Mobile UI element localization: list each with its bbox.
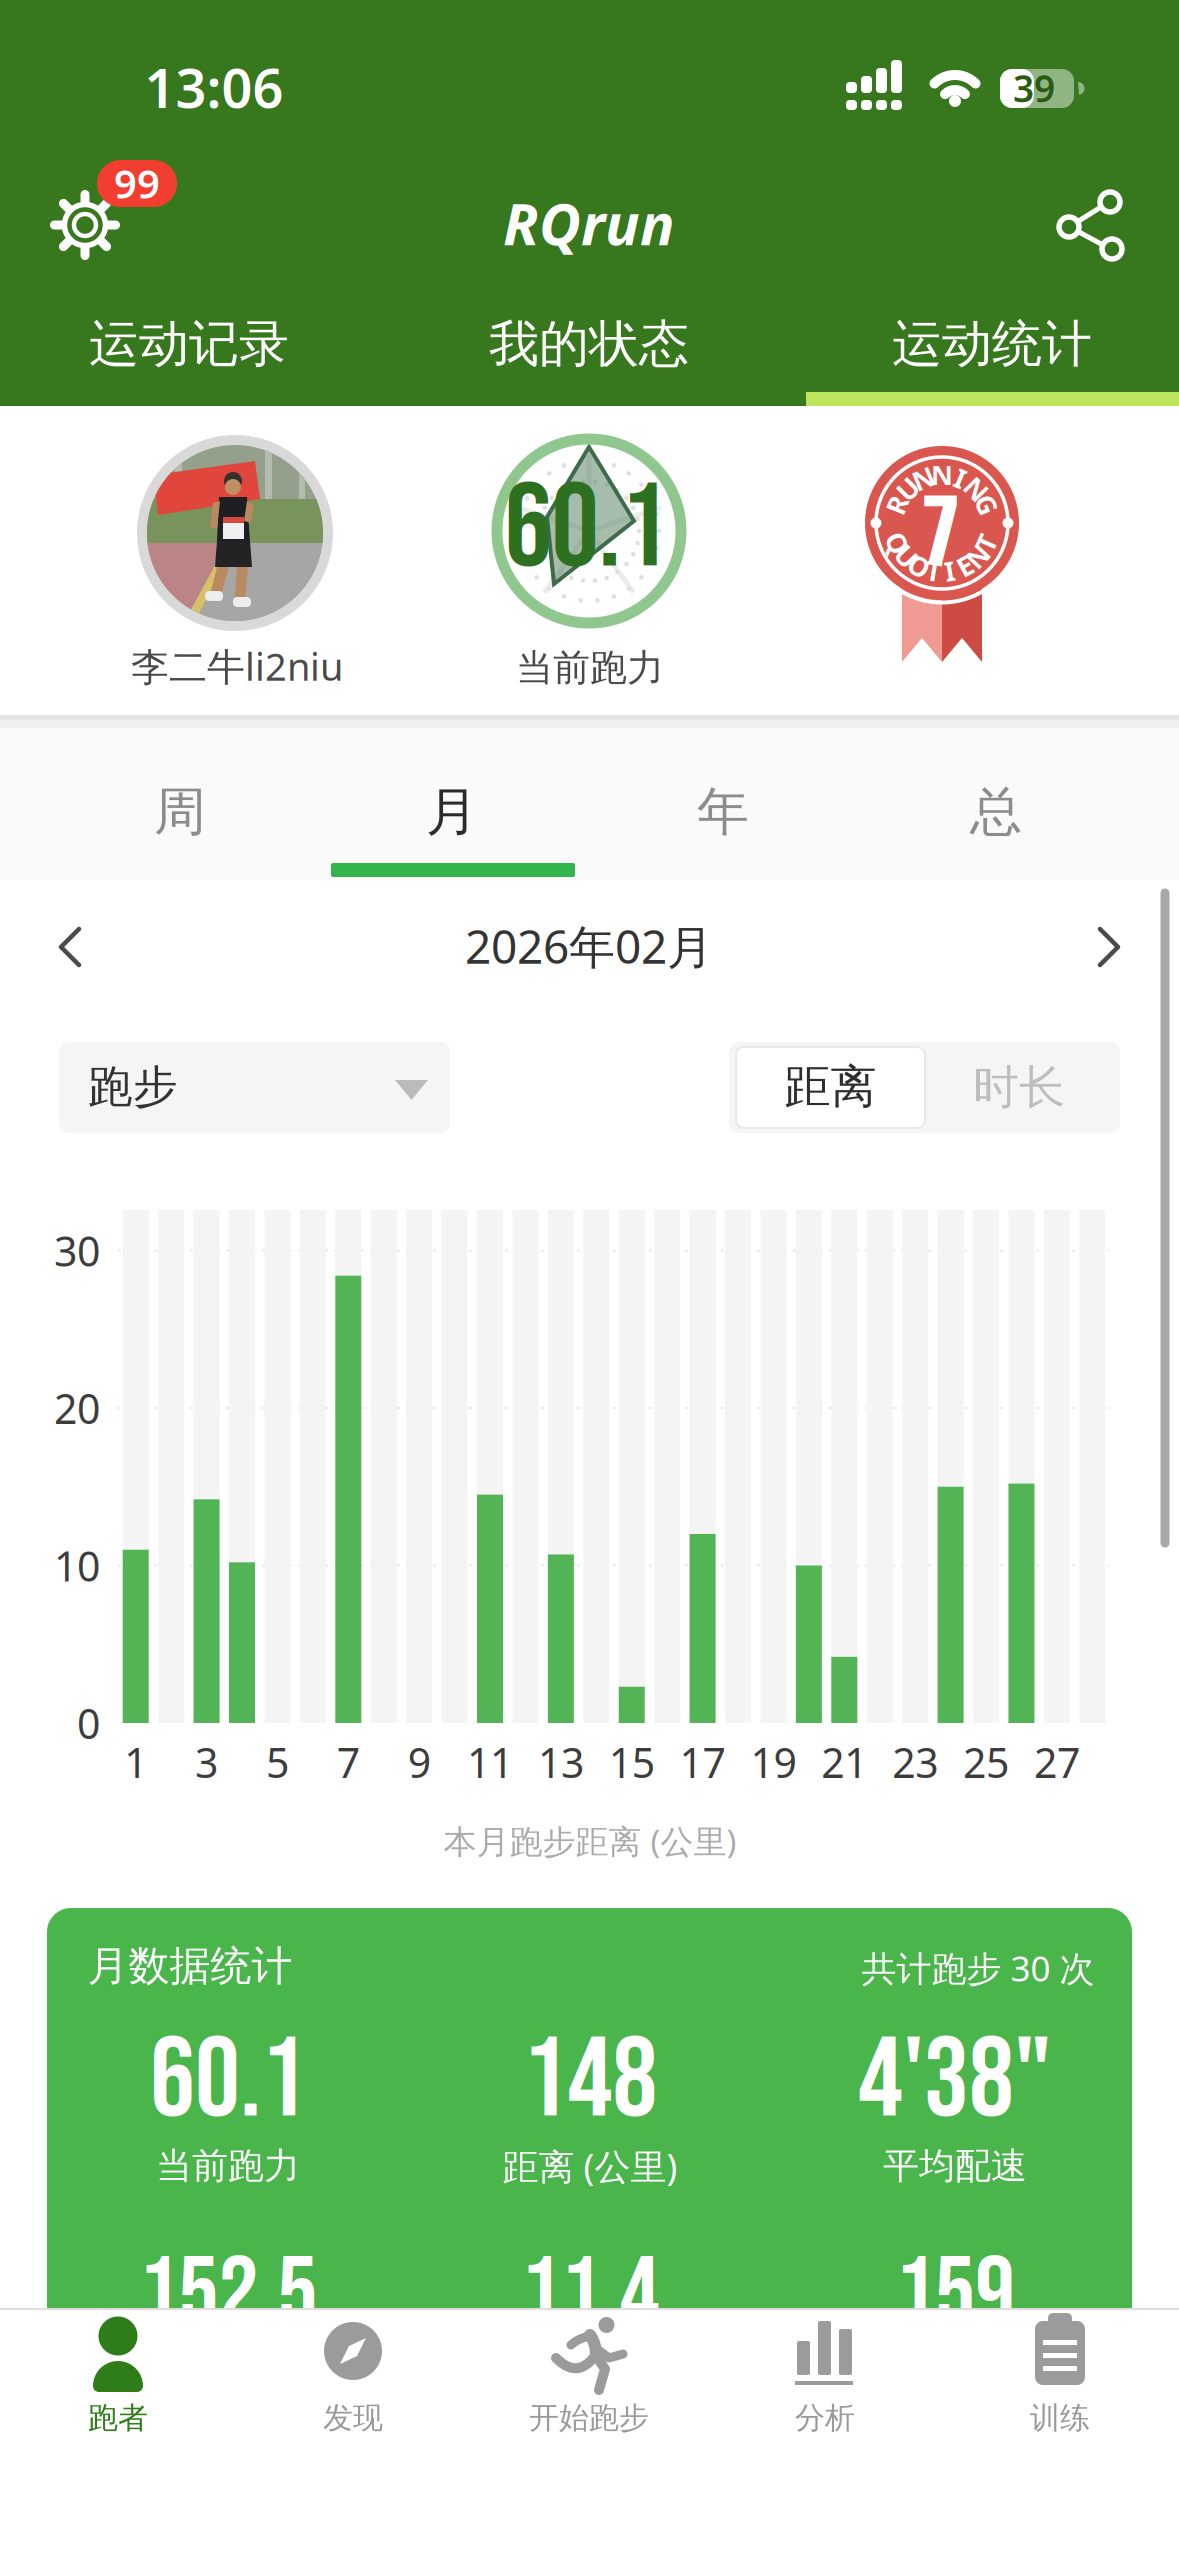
button[interactable]: 开始跑步 <box>489 2307 689 2457</box>
staticText: 开始跑步 <box>529 2399 649 2437</box>
staticText: 2026年02月 <box>465 915 713 977</box>
staticText: U <box>896 538 916 574</box>
staticText: I <box>944 552 955 589</box>
staticText: 19 <box>750 1734 796 1790</box>
staticText: E <box>957 547 972 584</box>
button[interactable]: 周 <box>60 762 300 862</box>
staticText: Q <box>887 524 908 561</box>
staticText: 运动记录 <box>89 312 289 375</box>
button[interactable]: Share <box>1050 181 1140 271</box>
staticText: 20 <box>54 1380 100 1436</box>
button[interactable]: 时长 <box>929 1047 1109 1128</box>
button[interactable]: 运动记录 <box>24 299 354 389</box>
staticText: 7 <box>922 463 959 589</box>
staticText: 17 <box>680 1734 726 1790</box>
staticText: 25 <box>963 1734 1009 1790</box>
button[interactable]: 跑步 <box>59 1042 450 1133</box>
button[interactable]: 距离 <box>736 1047 925 1128</box>
staticText: U <box>897 470 917 507</box>
button[interactable]: 发现 <box>253 2307 453 2457</box>
staticText: 分析 <box>795 2399 855 2437</box>
staticText: 训练 <box>1030 2399 1090 2437</box>
staticText: 5 <box>266 1734 289 1790</box>
staticText: I <box>955 460 966 497</box>
button[interactable]: Previous month <box>53 925 97 969</box>
staticText: 月数据统计 <box>87 1940 292 1992</box>
button[interactable]: Next month <box>1082 925 1126 969</box>
button[interactable]: 年 <box>603 762 843 862</box>
staticText: 30 <box>54 1223 100 1278</box>
staticText: 159 <box>895 2236 1015 2356</box>
staticText: G <box>977 486 997 523</box>
staticText: 13 <box>538 1734 584 1790</box>
staticText: 年 <box>697 779 749 845</box>
button[interactable]: 跑者 <box>18 2307 218 2457</box>
staticText: 9 <box>408 1734 431 1790</box>
staticText: T <box>978 524 994 561</box>
staticText: 当前跑力 <box>156 2143 300 2189</box>
staticText: 时长 <box>973 1058 1065 1116</box>
staticText: N <box>931 456 953 493</box>
staticText: 60.1 <box>504 459 667 601</box>
staticText: 11.4 <box>520 2236 659 2356</box>
staticText: 3 <box>195 1734 218 1790</box>
staticText: 15 <box>609 1734 655 1790</box>
staticText: 李二牛li2niu <box>131 640 343 692</box>
staticText: 总 <box>970 779 1022 845</box>
staticText: O <box>908 547 929 584</box>
button[interactable]: 月 <box>332 762 572 862</box>
button[interactable]: Settings <box>30 130 210 310</box>
staticText: 本月跑步距离 (公里) <box>443 1818 736 1863</box>
staticText: 39 <box>1013 63 1055 113</box>
staticText: 月 <box>426 779 478 845</box>
staticText: 共计跑步 30 次 <box>861 1944 1094 1992</box>
staticText: 13:06 <box>144 50 283 124</box>
staticText: 我的状态 <box>489 312 689 375</box>
staticText: 跑步 <box>88 1059 178 1115</box>
staticText: 11 <box>467 1734 513 1790</box>
button[interactable]: 分析 <box>725 2307 925 2457</box>
staticText: 27 <box>1034 1734 1080 1790</box>
staticText: 23 <box>892 1734 938 1790</box>
staticText: 距离 <box>784 1058 876 1116</box>
staticText: N <box>965 470 987 507</box>
staticText: R <box>888 486 906 523</box>
button[interactable]: 我的状态 <box>424 299 754 389</box>
staticText: 平均配速 <box>883 2143 1027 2189</box>
staticText: 当前跑力 <box>516 645 664 691</box>
staticText: 周 <box>154 779 206 845</box>
staticText: N <box>912 460 934 497</box>
staticText: 4'38" <box>858 2015 1052 2149</box>
staticText: T <box>926 552 942 589</box>
staticText: 7 <box>337 1734 360 1790</box>
staticText: 0 <box>77 1695 100 1751</box>
staticText: 152.5 <box>138 2236 317 2356</box>
staticText: 距离 (公里) <box>502 2141 677 2190</box>
staticText: N <box>967 538 989 574</box>
staticText: 1 <box>124 1734 147 1790</box>
staticText: 10 <box>54 1538 100 1593</box>
staticText: RQrun <box>503 184 675 262</box>
staticText: 21 <box>821 1734 867 1790</box>
button[interactable]: 运动统计 <box>827 299 1157 389</box>
staticText: 发现 <box>323 2399 383 2437</box>
staticText: 99 <box>114 156 160 210</box>
staticText: 60.1 <box>150 2015 306 2149</box>
button[interactable]: 训练 <box>960 2307 1160 2457</box>
staticText: 运动统计 <box>892 312 1092 375</box>
staticText: 跑者 <box>88 2399 148 2437</box>
staticText: 148 <box>522 2015 657 2149</box>
button[interactable]: 总 <box>876 762 1116 862</box>
